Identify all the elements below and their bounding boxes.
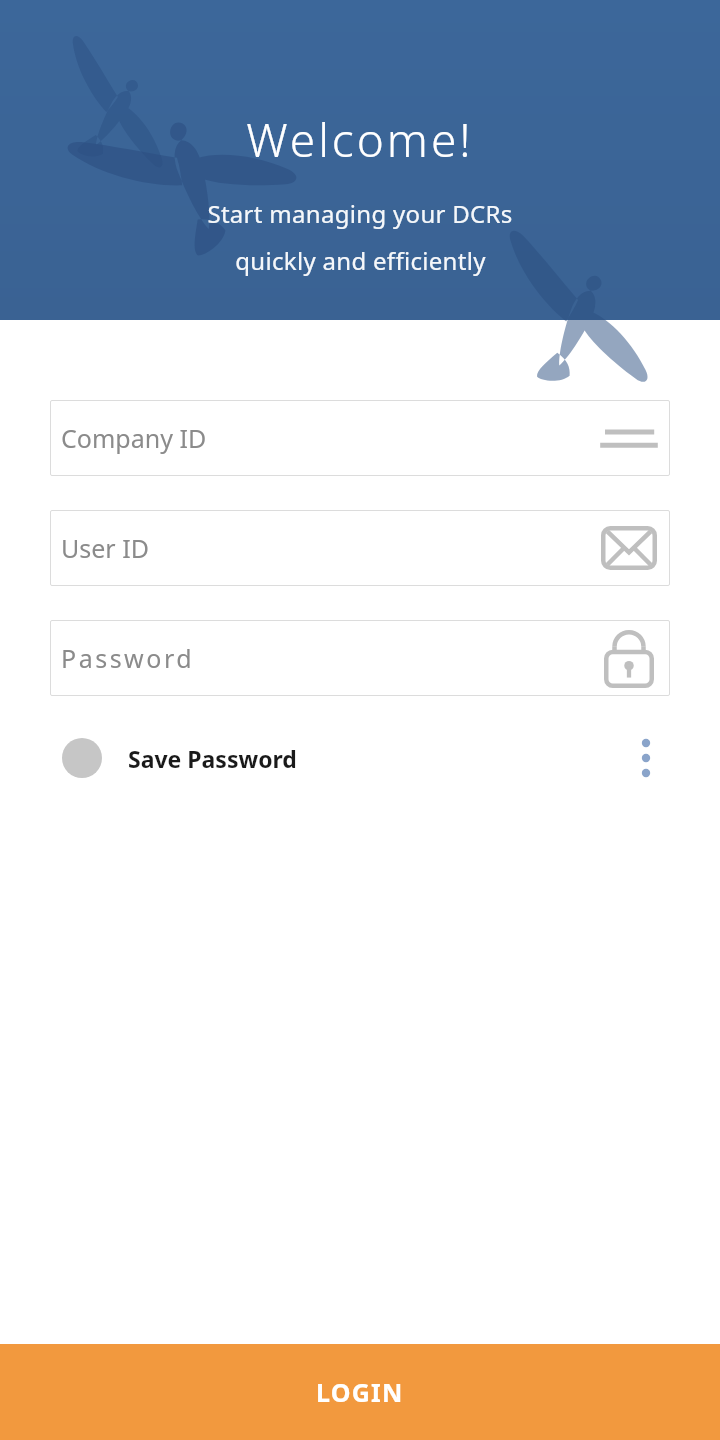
button[interactable]: User ID — [50, 510, 670, 586]
button[interactable]: Password — [50, 620, 670, 696]
button[interactable]: More options — [622, 734, 670, 782]
staticText: User ID — [61, 531, 599, 565]
staticText: Start managing your DCRs — [207, 197, 513, 230]
staticText: Save Password — [128, 743, 297, 774]
staticText: Welcome! — [246, 108, 474, 171]
staticText: LOGIN — [316, 1375, 404, 1409]
other: Password — [599, 628, 659, 688]
button[interactable]: LOGIN — [0, 1344, 720, 1440]
staticText: Password — [61, 641, 599, 675]
other: User email — [599, 518, 659, 578]
button[interactable]: Save Password — [50, 738, 622, 778]
staticText: Company ID — [61, 421, 599, 455]
staticText: quickly and efficiently — [235, 244, 486, 277]
button[interactable]: Company ID — [50, 400, 670, 476]
other: Company — [599, 408, 659, 468]
